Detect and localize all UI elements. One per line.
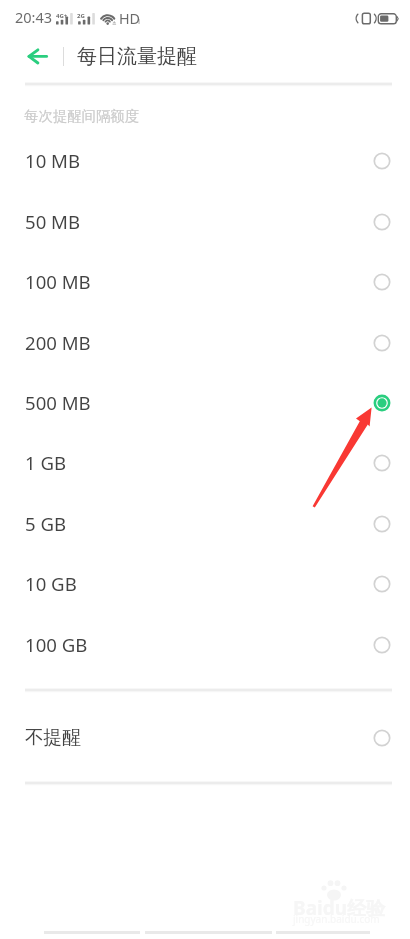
staticText: 不提醒 — [25, 726, 81, 749]
staticText: 10 MB — [25, 148, 81, 173]
staticText: Baidu经验 — [293, 895, 386, 921]
button[interactable]: 100 MB — [0, 251, 410, 311]
staticText: 2G — [77, 12, 85, 20]
staticText: 20:43 — [15, 7, 53, 27]
button[interactable]: 1 GB — [0, 432, 410, 492]
staticText: 100 GB — [25, 632, 88, 657]
staticText: jingyan.baidu.com — [293, 912, 380, 926]
button[interactable]: 100 GB — [0, 614, 410, 674]
staticText: 1 — [137, 17, 141, 26]
button[interactable]: 200 MB — [0, 312, 410, 372]
staticText: 100 MB — [25, 269, 91, 294]
button[interactable]: 500 MB — [0, 372, 410, 432]
button[interactable]: 50 MB — [0, 191, 410, 251]
staticText: 200 MB — [25, 330, 91, 355]
button[interactable]: 5 GB — [0, 493, 410, 553]
button[interactable]: 10 GB — [0, 553, 410, 613]
staticText: HD — [119, 9, 141, 28]
staticText: 4G+ — [56, 12, 68, 20]
button[interactable]: 10 MB — [0, 130, 410, 190]
staticText: 500 MB — [25, 390, 91, 415]
button[interactable]: Back — [18, 40, 58, 74]
staticText: 10 GB — [25, 571, 77, 596]
staticText: 每次提醒间隔额度 — [24, 107, 140, 125]
button[interactable]: 不提醒 — [0, 707, 410, 767]
staticText: 1 GB — [25, 450, 67, 475]
staticText: 5 GB — [25, 511, 67, 536]
staticText: 每日流量提醒 — [77, 44, 197, 69]
staticText: 50 MB — [25, 209, 81, 234]
